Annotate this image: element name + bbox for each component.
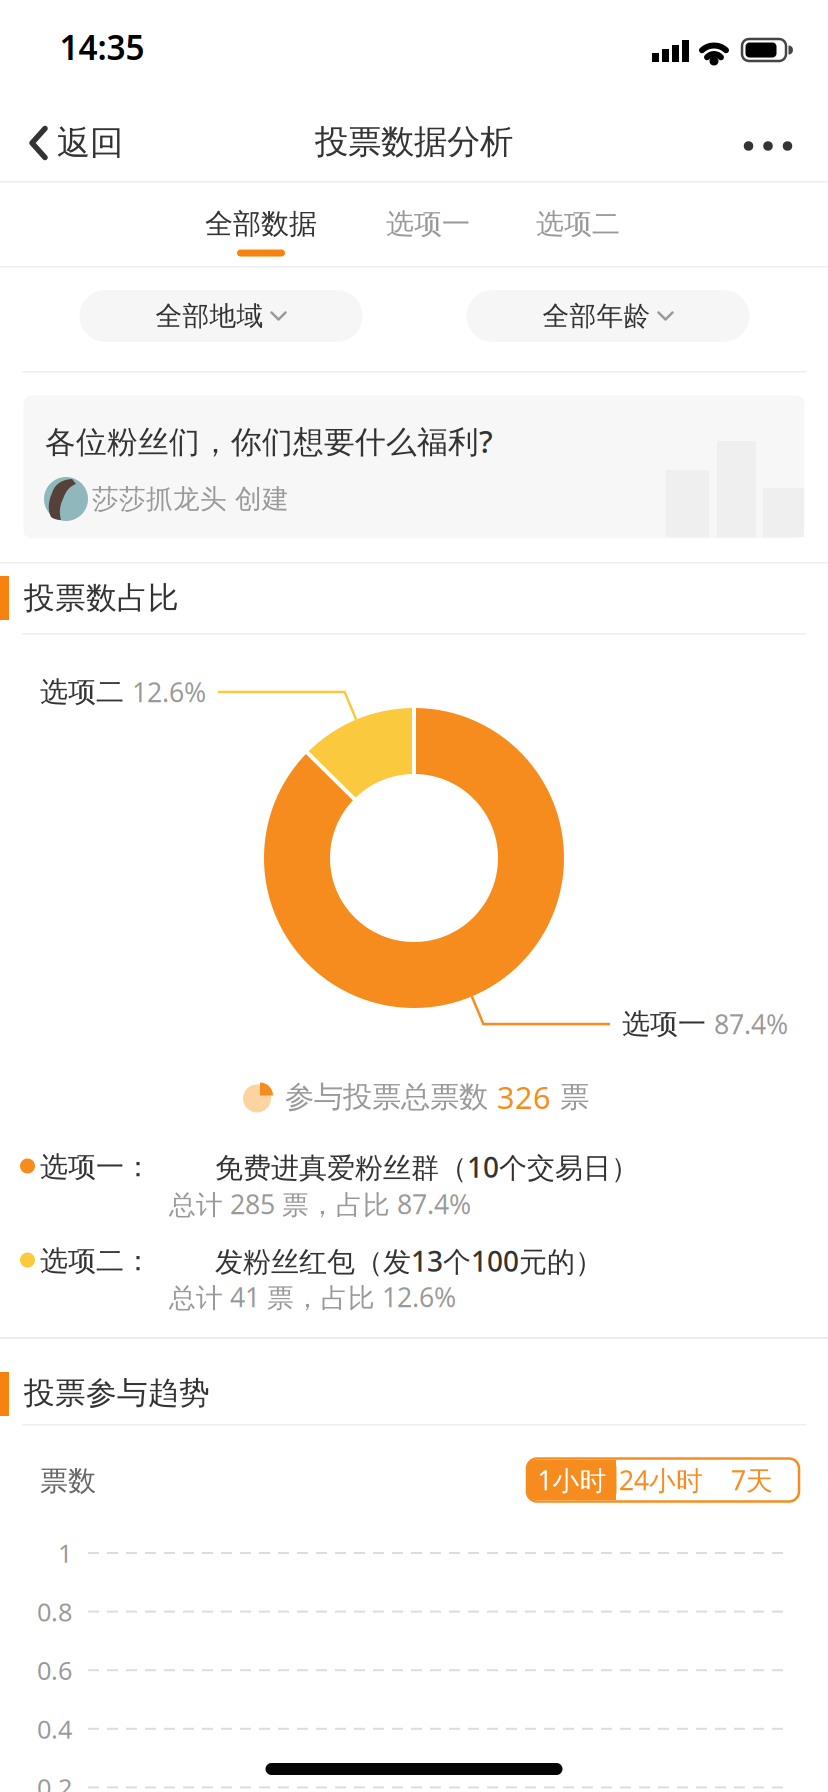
- staticText: 0.4: [37, 1712, 72, 1746]
- staticText: 0.2: [37, 1771, 72, 1792]
- button[interactable]: 全部数据: [183, 183, 339, 265]
- staticText: 12.6%: [132, 674, 206, 710]
- button[interactable]: 全部地域: [79, 290, 362, 342]
- staticText: 0.8: [37, 1595, 72, 1628]
- staticText: 326: [497, 1077, 551, 1117]
- staticText: 各位粉丝们，你们想要什么福利?: [45, 421, 493, 461]
- staticText: 总计 285 票，占比 87.4%: [169, 1186, 471, 1222]
- button[interactable]: 24小时: [617, 1460, 705, 1500]
- staticText: 莎莎抓龙头 创建: [92, 483, 289, 515]
- button[interactable]: 7天: [708, 1460, 796, 1500]
- staticText: 选项一: [622, 1007, 706, 1041]
- staticText: 全部地域: [155, 300, 263, 332]
- staticText: 全部数据: [205, 207, 317, 241]
- button[interactable]: More: [744, 141, 792, 151]
- staticText: 投票参与趋势: [24, 1374, 210, 1412]
- staticText: 票: [551, 1079, 589, 1115]
- staticText: 投票数占比: [24, 579, 179, 617]
- button[interactable]: 返回: [29, 122, 123, 163]
- staticText: 14:35: [59, 25, 144, 69]
- staticText: 全部年龄: [542, 300, 650, 332]
- staticText: 选项一：: [40, 1150, 152, 1184]
- staticText: 1: [58, 1536, 72, 1570]
- staticText: 返回: [57, 122, 123, 163]
- staticText: 投票数据分析: [315, 121, 513, 162]
- button[interactable]: 选项一: [363, 183, 493, 265]
- staticText: 选项二: [536, 207, 620, 241]
- staticText: 总计 41 票，占比 12.6%: [169, 1279, 456, 1315]
- staticText: 7天: [731, 1462, 773, 1498]
- staticText: 参与投票总票数: [285, 1079, 497, 1115]
- button[interactable]: 全部年龄: [466, 290, 749, 342]
- staticText: 票数: [40, 1464, 96, 1498]
- staticText: 24小时: [619, 1462, 703, 1498]
- staticText: 选项二: [40, 675, 124, 709]
- staticText: 87.4%: [714, 1006, 788, 1042]
- staticText: 选项二：: [40, 1244, 152, 1278]
- button[interactable]: 选项二: [513, 183, 643, 265]
- staticText: 0.6: [37, 1653, 72, 1687]
- staticText: 免费进真爱粉丝群（10个交易日）: [215, 1148, 639, 1186]
- staticText: 选项一: [386, 207, 470, 241]
- staticText: 1小时: [537, 1462, 606, 1498]
- staticText: 发粉丝红包（发13个100元的）: [215, 1242, 603, 1280]
- button[interactable]: 1小时: [527, 1460, 616, 1500]
